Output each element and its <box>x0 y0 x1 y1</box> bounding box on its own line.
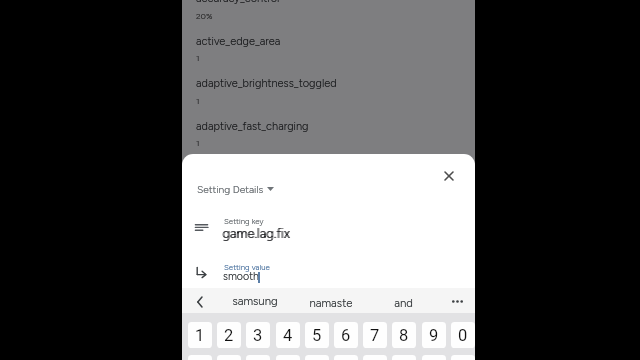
staticText: Setting Details <box>197 183 264 195</box>
staticText: 4 <box>283 326 293 345</box>
staticText: active_edge_area <box>196 35 281 48</box>
button[interactable]: Setting Details <box>197 181 274 196</box>
button[interactable]: namaste <box>292 288 369 313</box>
staticText: samsung <box>232 294 278 308</box>
staticText: smooth <box>223 270 259 283</box>
staticText: adaptive_fast_charging <box>196 120 309 133</box>
staticText: namaste <box>309 296 353 310</box>
staticText: accuracy_control <box>196 0 280 5</box>
other: Key <box>195 224 209 231</box>
button[interactable]: 4 <box>276 322 300 348</box>
staticText: Setting value <box>224 262 270 271</box>
staticText: 1 <box>196 96 200 106</box>
staticText: Setting key <box>224 216 264 225</box>
button[interactable]: samsung <box>214 288 296 313</box>
button[interactable]: Previous suggestions <box>186 289 212 314</box>
staticText: 2 <box>224 326 234 345</box>
staticText: and <box>394 296 413 310</box>
staticText: 1 <box>196 53 200 63</box>
staticText: accuracy_control <box>196 0 280 5</box>
button[interactable]: More options <box>444 289 470 314</box>
button[interactable]: and <box>372 288 434 313</box>
staticText: namaste <box>309 296 353 310</box>
button[interactable]: p <box>451 355 475 360</box>
staticText: adaptive_brightness_toggled <box>196 77 337 90</box>
button[interactable]: 1 <box>188 322 212 348</box>
button[interactable]: r <box>276 355 300 360</box>
button[interactable]: i <box>392 355 416 360</box>
button[interactable]: 2 <box>217 322 241 348</box>
staticText: Setting Details <box>197 183 264 195</box>
button[interactable]: Value <box>182 259 475 287</box>
staticText: 1 <box>196 138 200 148</box>
button[interactable]: q <box>188 355 212 360</box>
button[interactable]: y <box>334 355 358 360</box>
button[interactable]: 8 <box>392 322 416 348</box>
button[interactable]: e <box>246 355 270 360</box>
staticText: 3 <box>253 326 263 345</box>
button[interactable]: 7 <box>363 322 387 348</box>
staticText: game.lag.fix <box>223 226 291 242</box>
staticText: 20% <box>196 11 213 21</box>
button[interactable]: 9 <box>422 322 446 348</box>
staticText: 6 <box>341 326 351 345</box>
button[interactable]: 6 <box>334 322 358 348</box>
button[interactable]: 5 <box>305 322 329 348</box>
staticText: 8 <box>399 326 409 345</box>
staticText: game.lag.fix <box>222 226 290 242</box>
staticText: active_edge_area <box>196 35 281 48</box>
staticText: 0 <box>458 326 468 345</box>
other: Value <box>196 267 209 279</box>
staticText: Setting value <box>224 262 270 271</box>
staticText: 20% <box>196 11 213 21</box>
button[interactable]: t <box>305 355 329 360</box>
button[interactable]: Key <box>182 214 475 242</box>
staticText: 1 <box>196 53 200 63</box>
staticText: 9 <box>429 326 439 345</box>
staticText: Setting key <box>224 216 264 225</box>
button[interactable]: 3 <box>246 322 270 348</box>
staticText: 7 <box>370 326 380 345</box>
button[interactable]: 0 <box>451 322 475 348</box>
button[interactable]: w <box>217 355 241 360</box>
staticText: smooth <box>223 270 259 283</box>
staticText: 1 <box>195 326 205 345</box>
button[interactable]: o <box>422 355 446 360</box>
button[interactable]: Close <box>439 166 459 186</box>
button[interactable]: u <box>363 355 387 360</box>
staticText: samsung <box>232 294 278 308</box>
staticText: and <box>394 296 413 310</box>
staticText: 1 <box>196 138 200 148</box>
staticText: adaptive_fast_charging <box>196 120 309 133</box>
staticText: 1 <box>196 96 200 106</box>
staticText: 5 <box>312 326 322 345</box>
staticText: adaptive_brightness_toggled <box>196 77 337 90</box>
